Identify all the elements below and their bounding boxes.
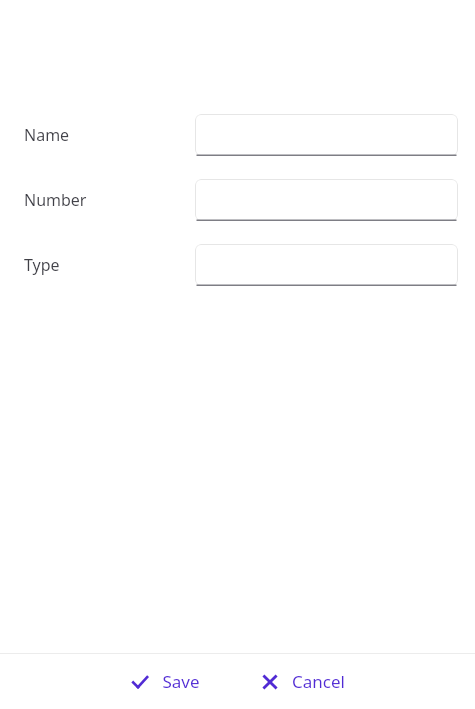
staticText: Name xyxy=(24,124,70,146)
staticText: Number xyxy=(24,189,87,211)
button[interactable]: Name xyxy=(195,114,458,156)
staticText: Type xyxy=(24,254,60,276)
button[interactable]: Save xyxy=(120,662,210,701)
button[interactable]: Cancel xyxy=(250,662,355,701)
staticText: Cancel xyxy=(292,670,345,693)
staticText: Save xyxy=(162,670,200,693)
button[interactable]: Number xyxy=(195,179,458,221)
button[interactable]: Type xyxy=(195,244,458,286)
